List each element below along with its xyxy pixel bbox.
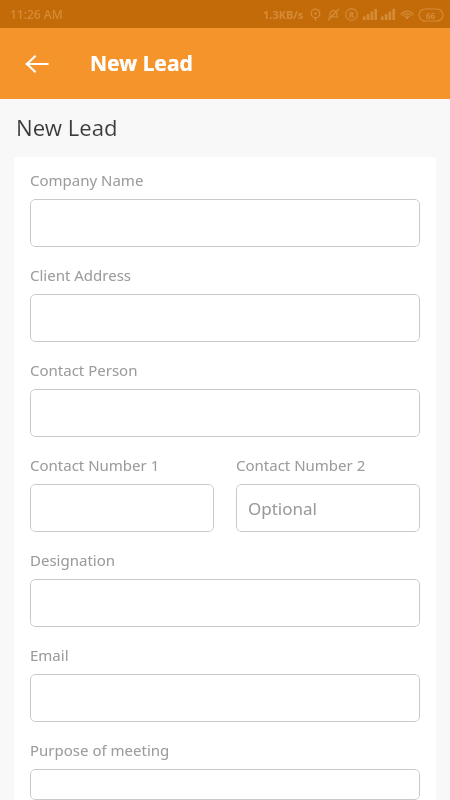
button[interactable] xyxy=(30,484,214,532)
staticText: 1.3KB/s xyxy=(263,7,304,22)
staticText: New Lead xyxy=(90,49,193,78)
button[interactable] xyxy=(30,579,420,627)
staticText: 66 xyxy=(426,10,436,21)
staticText: 11:26 AM xyxy=(10,6,63,22)
staticText: Contact Person xyxy=(30,360,138,380)
staticText: Purpose of meeting xyxy=(30,740,170,760)
staticText: Designation xyxy=(30,550,116,570)
button[interactable]: Back xyxy=(13,40,61,88)
staticText: Company Name xyxy=(30,170,144,190)
button[interactable] xyxy=(30,199,420,247)
staticText: Contact Number 2 xyxy=(236,455,366,475)
button[interactable] xyxy=(30,674,420,722)
button[interactable] xyxy=(30,294,420,342)
staticText: Email xyxy=(30,645,69,665)
staticText: New Lead xyxy=(16,112,118,142)
staticText: Contact Number 1 xyxy=(30,455,160,475)
button[interactable] xyxy=(30,769,420,800)
button[interactable]: Optional xyxy=(236,484,420,532)
staticText: Client Address xyxy=(30,265,132,285)
staticText: Optional xyxy=(248,497,317,520)
staticText: R xyxy=(349,9,355,20)
button[interactable] xyxy=(30,389,420,437)
